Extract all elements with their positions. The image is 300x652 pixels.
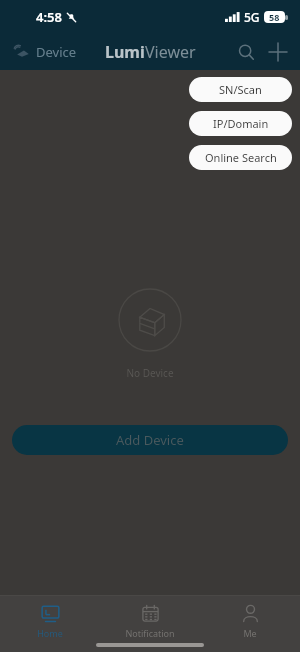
button[interactable]: Add [262, 36, 294, 68]
button[interactable]: Online Search [189, 145, 292, 170]
button[interactable]: IP/Domain [189, 111, 292, 136]
staticText: 5G [244, 9, 260, 25]
staticText: Online Search [205, 150, 277, 165]
staticText: SN/Scan [219, 82, 262, 97]
button[interactable]: Device [10, 40, 81, 64]
button[interactable]: Home [0, 596, 100, 639]
button[interactable]: Search [230, 36, 262, 68]
staticText: Home [37, 627, 63, 639]
staticText: Device [36, 43, 77, 61]
button[interactable]: Me [200, 596, 300, 639]
button[interactable]: SN/Scan [189, 77, 292, 102]
staticText: 58 [269, 11, 280, 23]
staticText: Viewer [145, 41, 196, 63]
button[interactable]: Add Device [12, 425, 288, 455]
staticText: IP/Domain [213, 116, 269, 131]
staticText: Lumi [105, 41, 145, 63]
staticText: Notification [125, 627, 175, 639]
staticText: Add Device [116, 431, 184, 449]
staticText: Me [243, 627, 257, 639]
button[interactable]: Notification [100, 596, 200, 639]
staticText: 4:58 [36, 8, 62, 26]
staticText: No Device [126, 366, 174, 380]
